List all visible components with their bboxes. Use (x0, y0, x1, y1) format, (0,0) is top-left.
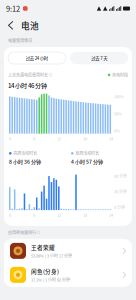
staticText: 0% (114, 128, 120, 134)
button[interactable]: 王者荣耀 (4, 239, 132, 263)
staticText: 12 (57, 136, 61, 141)
staticText: 王者荣耀 (31, 243, 55, 251)
staticText: 100% (114, 94, 124, 99)
staticText: 8 小时 36 分钟 (9, 158, 41, 165)
staticText: 4 小时 57 分钟 (71, 158, 103, 165)
staticText: 30 分钟 (114, 189, 127, 194)
button[interactable]: 过去 24 小时 (8, 52, 65, 64)
staticText: 过去 24 小时 (26, 55, 48, 61)
staticText: 0 分钟 (114, 204, 125, 210)
staticText: 18 (83, 212, 87, 218)
staticText: 60 分钟 (114, 173, 127, 179)
staticText: 闲鱼(分身) (31, 267, 59, 275)
button[interactable]: 过去 7 天 (70, 52, 128, 64)
staticText: 亮屏活动时长 (13, 150, 37, 156)
staticText: 50% (114, 111, 122, 117)
staticText: 9:12 (6, 3, 20, 14)
staticText: 0 (9, 136, 11, 141)
button[interactable]: Back (5, 17, 17, 34)
staticText: 6 (33, 136, 35, 141)
staticText: 6 (33, 212, 35, 218)
staticText: 18 (83, 136, 87, 141)
staticText: 息屏活动时长 (75, 150, 99, 156)
button[interactable]: 闲鱼(分身) (4, 263, 132, 287)
staticText: 电池 (21, 19, 39, 32)
staticText: 应用耗电量排行 (8, 229, 36, 235)
staticText: 充电时段 (112, 72, 128, 78)
staticText: 24 (109, 136, 113, 141)
staticText: 24 (109, 212, 113, 218)
staticText: 0 (9, 212, 11, 218)
staticText: 电量使用情况 (8, 37, 32, 43)
staticText: 14 小时 46 分钟 (8, 81, 47, 90)
staticText: 过去 7 天 (91, 55, 107, 61)
staticText: 53.89% | 3 小时 17 分钟 (31, 253, 72, 259)
staticText: 上次充满电后使用时长 (8, 72, 48, 78)
staticText: 12 (57, 212, 61, 218)
staticText: 17.1% | 1 小时 02 分钟 (31, 277, 70, 283)
